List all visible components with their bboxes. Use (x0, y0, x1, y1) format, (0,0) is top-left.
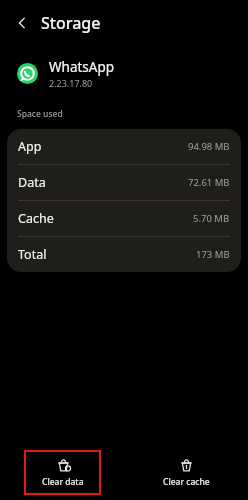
staticText: 5.70 MB (193, 212, 230, 225)
staticText: 173 MB (196, 248, 230, 261)
staticText: Data (18, 174, 46, 191)
button[interactable]: Total (7, 237, 241, 272)
staticText: Clear cache (163, 476, 210, 488)
button[interactable]: Cache (7, 201, 241, 236)
other: Clear cache (179, 457, 194, 472)
staticText: Space used (17, 108, 63, 120)
staticText: Cache (18, 210, 54, 227)
button[interactable]: Data (7, 165, 241, 200)
staticText: App (18, 138, 42, 155)
staticText: 2.23.17.80 (49, 77, 93, 89)
staticText: WhatsApp (49, 58, 115, 76)
staticText: Total (18, 246, 47, 263)
staticText: 94.98 MB (188, 140, 230, 153)
button[interactable]: App (7, 129, 241, 164)
button[interactable]: Clear data (24, 450, 101, 495)
other: Clear data (56, 457, 71, 472)
button[interactable]: Clear cache (124, 445, 248, 500)
staticText: Storage (41, 12, 101, 34)
staticText: 72.61 MB (188, 176, 230, 189)
staticText: Clear data (42, 476, 84, 488)
button[interactable]: Back (8, 9, 36, 37)
